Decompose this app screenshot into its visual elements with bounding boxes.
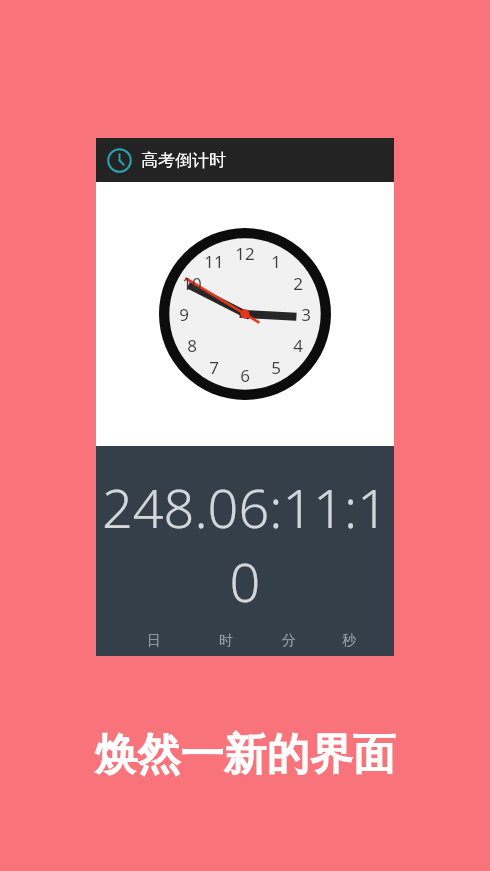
staticText: 4 xyxy=(293,334,303,357)
staticText: 1 xyxy=(271,250,281,273)
button[interactable]: 时 xyxy=(219,632,233,650)
staticText: 9 xyxy=(179,303,189,326)
button[interactable]: Countdown timer xyxy=(96,138,394,182)
button[interactable]: 秒 xyxy=(342,632,356,650)
staticText: 5 xyxy=(271,356,281,379)
staticText: 日 xyxy=(147,632,161,650)
staticText: 分 xyxy=(282,632,296,650)
staticText: 248.06:11:10 xyxy=(96,470,394,618)
staticText: 秒 xyxy=(342,632,356,650)
staticText: 7 xyxy=(209,356,219,379)
staticText: 时 xyxy=(219,632,233,650)
button[interactable]: 248.06:11:10 xyxy=(96,446,394,656)
button[interactable]: 日 xyxy=(147,632,161,650)
staticText: 焕然一新的界面 xyxy=(0,728,490,782)
staticText: 3 xyxy=(301,303,311,326)
staticText: 12 xyxy=(235,242,255,265)
staticText: 6 xyxy=(240,364,250,387)
staticText: 8 xyxy=(187,334,197,357)
staticText: 11 xyxy=(204,250,224,273)
button[interactable]: 分 xyxy=(282,632,296,650)
staticText: 10 xyxy=(182,272,202,295)
other: Countdown timer xyxy=(107,148,132,173)
staticText: 2 xyxy=(293,272,303,295)
button[interactable]: 12 xyxy=(96,182,394,446)
staticText: 高考倒计时 xyxy=(141,150,226,171)
